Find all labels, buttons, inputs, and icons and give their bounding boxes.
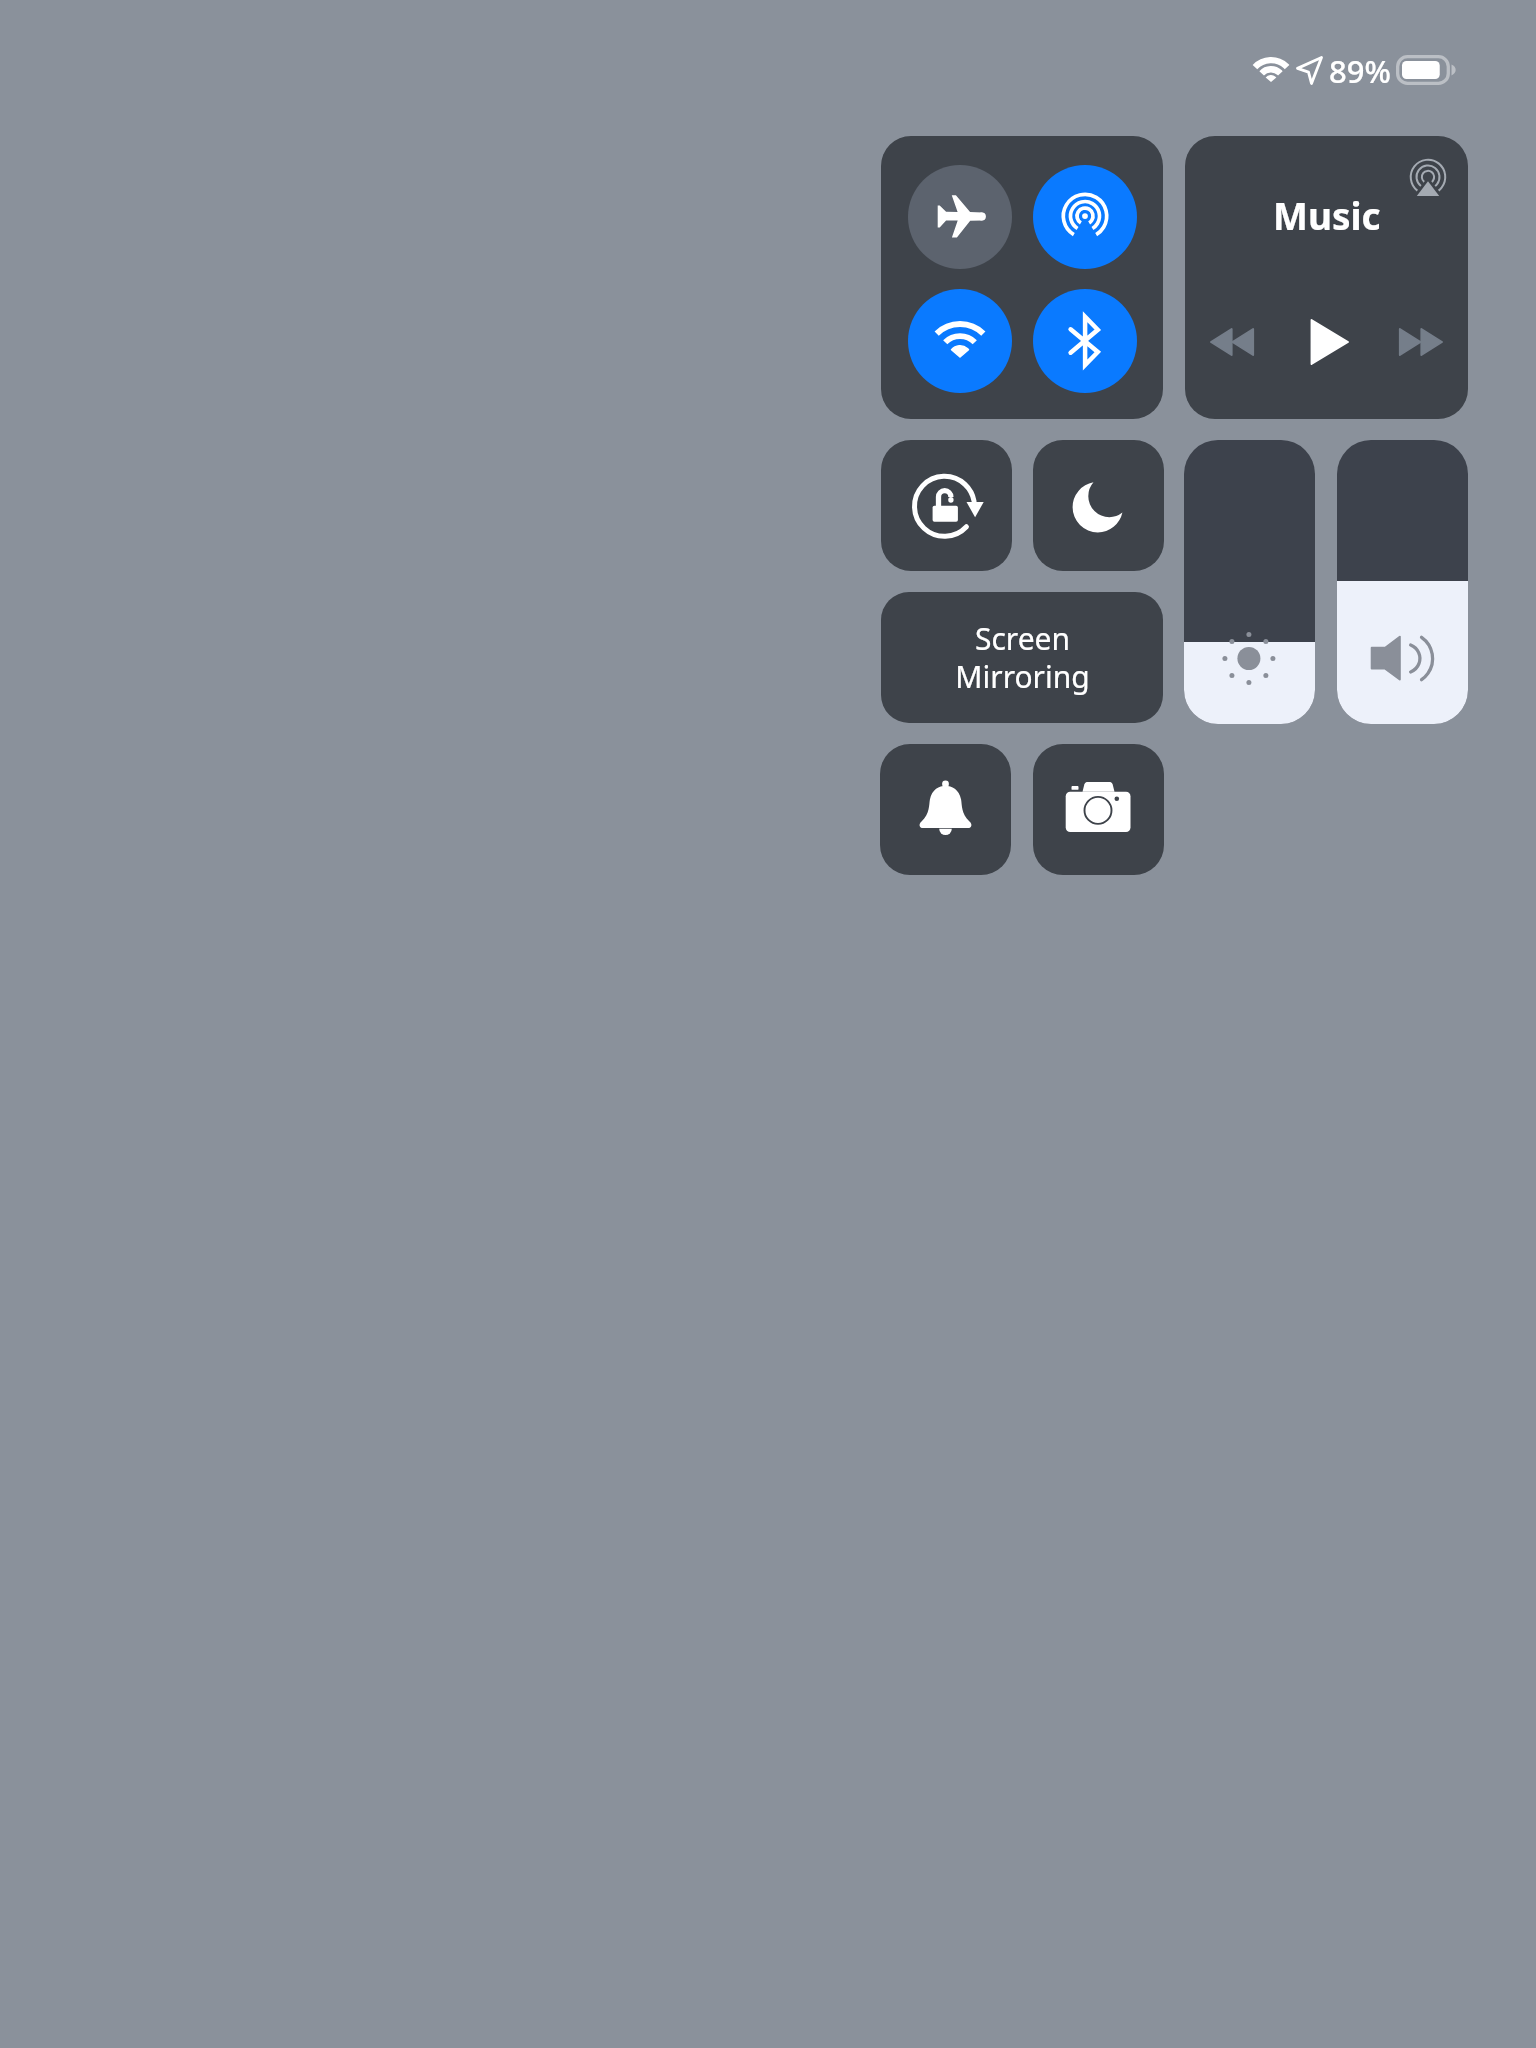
- button[interactable]: Volume: [1337, 440, 1468, 724]
- button[interactable]: Do Not Disturb: [1033, 440, 1164, 571]
- button[interactable]: AirPlay: [1185, 136, 1468, 419]
- button[interactable]: Airplane Mode: [908, 165, 1012, 269]
- button[interactable]: Screen Mirroring: [881, 592, 1163, 723]
- button[interactable]: Camera: [1033, 744, 1164, 875]
- staticText: 89%: [1329, 50, 1391, 92]
- staticText: Music: [1273, 190, 1381, 240]
- button[interactable]: Rotation Lock: [881, 440, 1012, 571]
- button[interactable]: Bluetooth: [1033, 289, 1137, 393]
- button[interactable]: Next: [1399, 329, 1442, 355]
- staticText: Screen Mirroring: [955, 618, 1090, 697]
- button[interactable]: Play: [1310, 320, 1348, 364]
- button[interactable]: AirDrop: [1033, 165, 1137, 269]
- button[interactable]: AirPlay: [1406, 155, 1450, 199]
- button[interactable]: Notifications: [880, 744, 1011, 875]
- button[interactable]: Wi-Fi: [908, 289, 1012, 393]
- button[interactable]: Brightness: [1184, 440, 1315, 724]
- button[interactable]: Previous: [1211, 329, 1254, 355]
